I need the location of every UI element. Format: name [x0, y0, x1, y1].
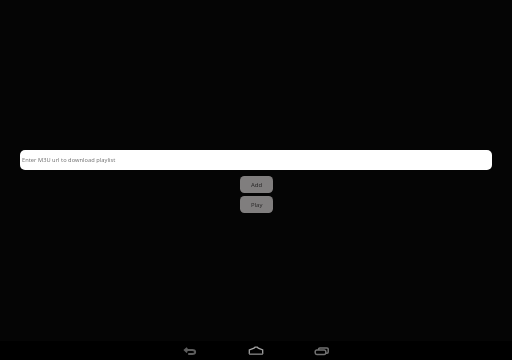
button[interactable]: Enter M3U url to download playlist	[20, 150, 492, 170]
staticText: Play	[251, 201, 263, 209]
staticText: Add	[251, 181, 263, 189]
button[interactable]: Home	[235, 341, 277, 360]
button[interactable]: Back	[170, 341, 212, 360]
button[interactable]: Add	[240, 176, 273, 193]
button[interactable]: Recent apps	[300, 341, 342, 360]
staticText: Enter M3U url to download playlist	[22, 156, 116, 164]
button[interactable]: Play	[240, 196, 273, 213]
